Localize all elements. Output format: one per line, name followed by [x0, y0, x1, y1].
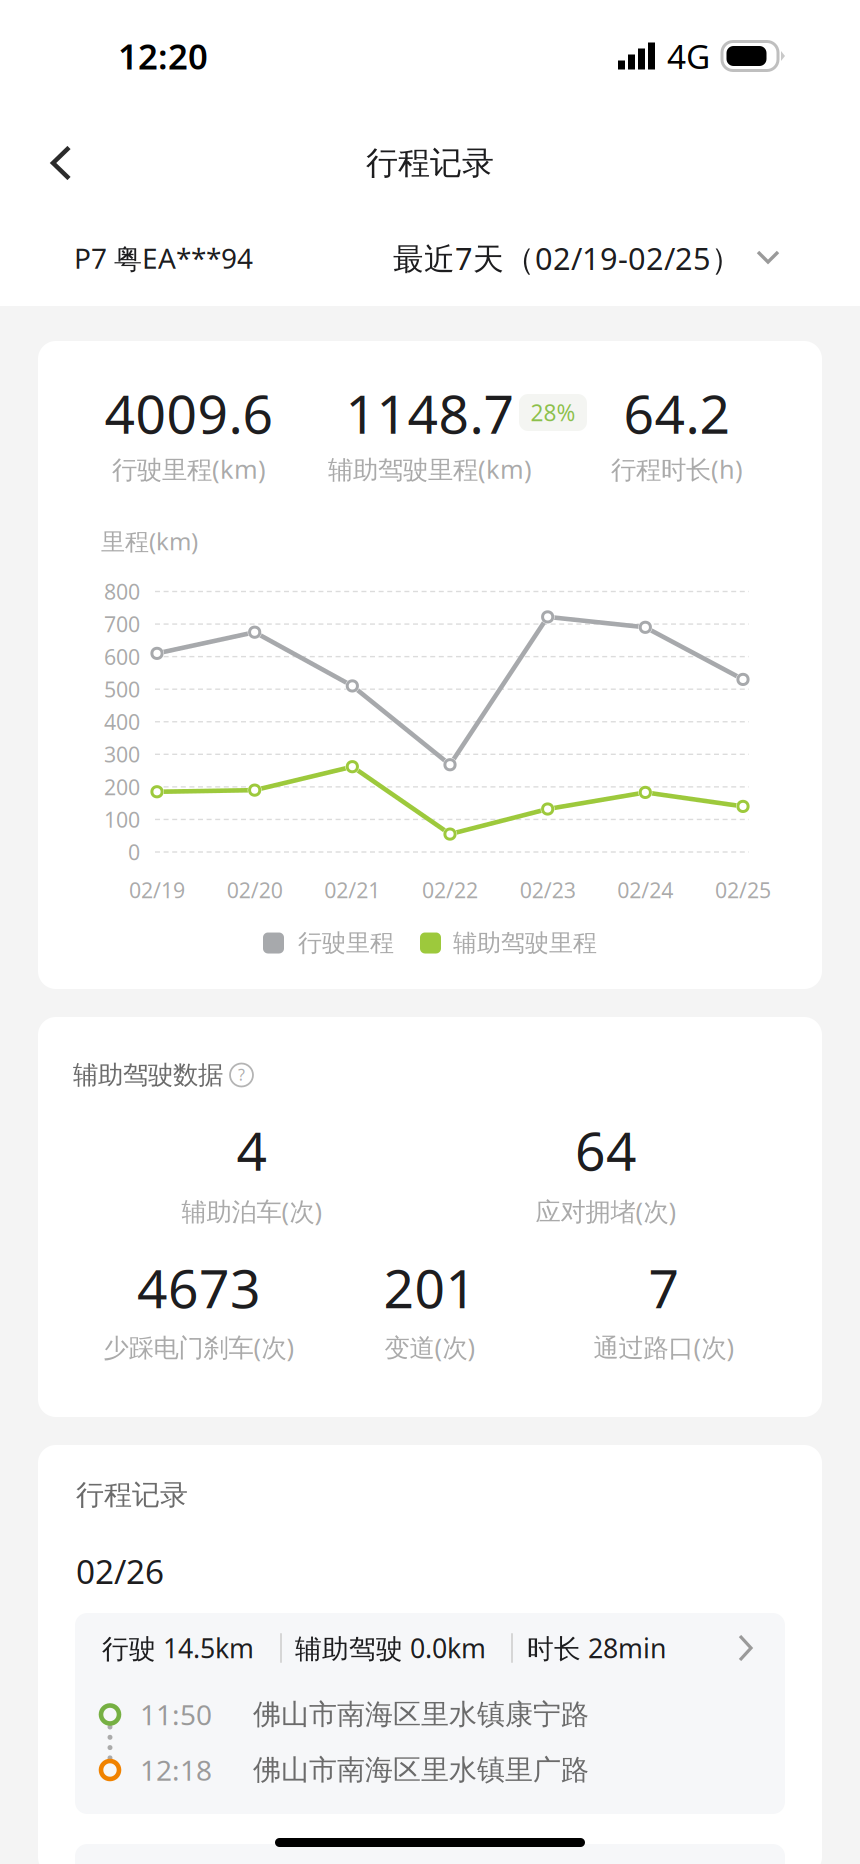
staticText: P7 粤EA***94 [74, 239, 253, 277]
staticText: 02/20 [227, 876, 283, 904]
staticText: 02/21 [324, 876, 380, 904]
staticText: 02/24 [617, 876, 673, 904]
staticText: 行程记录 [366, 143, 494, 183]
staticText: 辅助驾驶里程(km) [328, 452, 532, 486]
staticText: 64 [575, 1115, 637, 1185]
staticText: 时长 28min [527, 1630, 666, 1666]
staticText: 02/25 [715, 876, 771, 904]
staticText: 少踩电门刹车(次) [103, 1330, 294, 1364]
staticText: 佛山市南海区里水镇里广路 [253, 1753, 589, 1787]
staticText: 02/23 [520, 876, 576, 904]
staticText: 4009.6 [104, 378, 273, 448]
staticText: 200 [104, 773, 140, 801]
staticText: 辅助驾驶里程 [453, 928, 597, 958]
staticText: 400 [104, 708, 140, 736]
button[interactable]: Back [0, 131, 102, 194]
staticText: 行程时长(h) [611, 452, 743, 486]
staticText: 02/22 [422, 876, 478, 904]
staticText: 700 [104, 610, 140, 638]
staticText: 12:18 [140, 1751, 212, 1789]
staticText: 0 [128, 838, 140, 866]
staticText: 行程记录 [76, 1478, 188, 1512]
staticText: 行驶 14.5km [102, 1630, 254, 1666]
staticText: 500 [104, 675, 140, 703]
staticText: 12:20 [118, 33, 208, 79]
staticText: 02/26 [76, 1549, 164, 1593]
staticText: 28% [530, 397, 575, 427]
button[interactable]: 行驶 14.5km [75, 1613, 785, 1814]
staticText: 4 [236, 1115, 267, 1185]
staticText: 7 [648, 1252, 679, 1323]
staticText: 辅助泊车(次) [181, 1194, 322, 1228]
staticText: 行驶里程(km) [112, 452, 266, 486]
staticText: 最近7天（02/19-02/25） [393, 238, 742, 278]
staticText: 1148.7 [345, 378, 514, 448]
staticText: 行驶里程 [298, 928, 394, 958]
staticText: 201 [383, 1252, 476, 1323]
staticText: 300 [104, 740, 140, 768]
button[interactable]: About assisted driving data [230, 1063, 253, 1086]
staticText: 100 [104, 805, 140, 834]
staticText: 800 [104, 577, 140, 606]
staticText: 11:50 [140, 1696, 212, 1733]
staticText: 变道(次) [384, 1330, 475, 1364]
staticText: 02/19 [129, 876, 185, 904]
staticText: 辅助驾驶 0.0km [295, 1630, 486, 1666]
staticText: 通过路口(次) [593, 1330, 734, 1364]
staticText: 600 [104, 642, 140, 671]
staticText: 里程(km) [101, 525, 198, 557]
staticText: 4G [667, 34, 710, 78]
staticText: ? [238, 1064, 245, 1085]
staticText: 64.2 [623, 378, 730, 448]
staticText: 应对拥堵(次) [535, 1194, 676, 1228]
button[interactable]: 最近7天（02/19-02/25） [393, 238, 780, 278]
staticText: 佛山市南海区里水镇康宁路 [253, 1697, 589, 1732]
staticText: 辅助驾驶数据 [73, 1059, 223, 1090]
staticText: 4673 [137, 1252, 261, 1323]
